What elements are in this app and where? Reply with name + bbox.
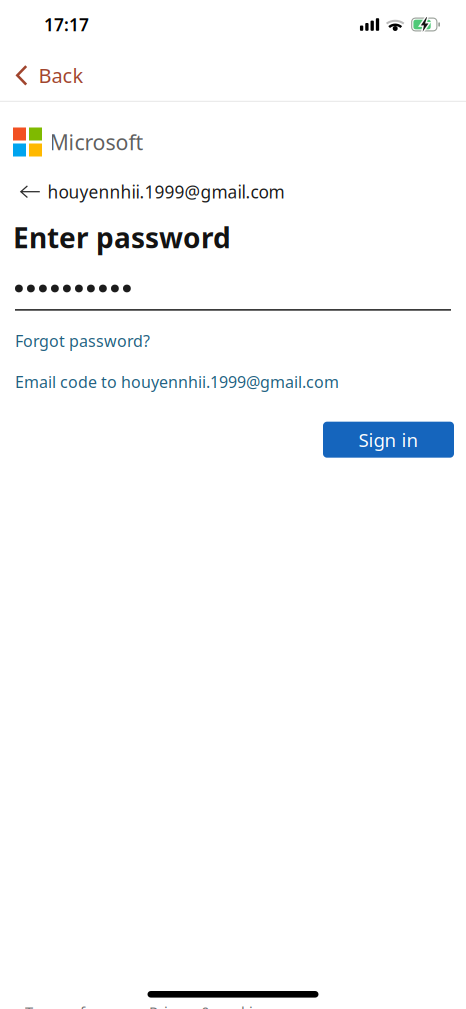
button[interactable]: Password [0, 256, 466, 311]
staticText: Enter password [13, 219, 231, 256]
staticText: houyennhii.1999@gmail.com [48, 180, 285, 203]
staticText: Forgot password? [15, 330, 150, 351]
button[interactable]: Forgot password? [0, 326, 164, 356]
staticText: Sign in [358, 427, 418, 452]
staticText: 17:17 [44, 13, 89, 36]
staticText: Email code to houyennhii.1999@gmail.com [15, 371, 339, 392]
staticText: Back [38, 62, 83, 89]
button[interactable]: Email code to houyennhii.1999@gmail.com [0, 367, 353, 397]
button[interactable]: Back [0, 50, 95, 101]
button[interactable]: Privacy & cookies [113, 1002, 268, 1009]
staticText: Microsoft [49, 128, 143, 156]
button[interactable]: Sign in [323, 422, 454, 458]
button[interactable]: houyennhii.1999@gmail.com [0, 174, 299, 210]
staticText: Terms of use [25, 1002, 113, 1009]
staticText: Privacy & cookies [149, 1002, 268, 1009]
button[interactable]: Terms of use [25, 1002, 113, 1009]
